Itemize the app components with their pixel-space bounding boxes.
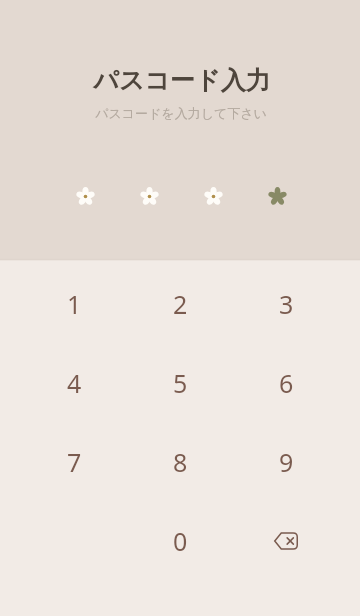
button[interactable]: 7 xyxy=(21,422,127,501)
staticText: 9 xyxy=(279,445,294,479)
button[interactable]: 9 xyxy=(233,422,339,501)
staticText: 8 xyxy=(173,445,188,479)
staticText: パスコードを入力して下さい xyxy=(95,105,267,121)
button[interactable]: Backspace xyxy=(233,501,339,580)
button[interactable]: 6 xyxy=(233,343,339,422)
staticText: 2 xyxy=(173,287,188,321)
button[interactable]: 8 xyxy=(127,422,233,501)
button[interactable]: 0 xyxy=(127,501,233,580)
staticText: 6 xyxy=(279,366,294,400)
button[interactable]: 1 xyxy=(21,264,127,343)
staticText: 7 xyxy=(67,445,82,479)
staticText: 0 xyxy=(173,524,188,558)
staticText: 1 xyxy=(67,287,82,321)
other: Backspace xyxy=(274,531,298,551)
staticText: パスコード入力 xyxy=(93,65,271,96)
button[interactable]: 2 xyxy=(127,264,233,343)
staticText: 4 xyxy=(67,366,82,400)
button[interactable]: 3 xyxy=(233,264,339,343)
button[interactable]: 5 xyxy=(127,343,233,422)
button[interactable]: 4 xyxy=(21,343,127,422)
staticText: 3 xyxy=(279,287,294,321)
staticText: 5 xyxy=(173,366,188,400)
